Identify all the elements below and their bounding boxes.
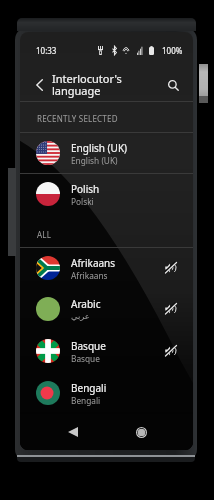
button[interactable]: Back — [29, 75, 49, 95]
staticText: ALL — [37, 229, 52, 240]
button[interactable]: English (UK) — [20, 132, 193, 174]
staticText: Bengali — [71, 381, 107, 395]
button[interactable]: Search — [163, 75, 183, 95]
staticText: Basque — [71, 339, 106, 353]
staticText: Polski — [71, 196, 94, 207]
button[interactable]: Back — [63, 422, 83, 442]
button[interactable]: Muted — [162, 342, 180, 360]
staticText: English (UK) — [71, 141, 128, 155]
button[interactable]: Arabic — [20, 288, 193, 330]
staticText: RECENTLY SELECTED — [37, 113, 118, 124]
button[interactable]: Home — [131, 422, 151, 442]
button[interactable]: Polish — [20, 173, 193, 215]
staticText: Polish — [71, 182, 100, 196]
button[interactable]: Basque — [20, 330, 193, 372]
staticText: Bengali — [71, 395, 101, 406]
button[interactable]: Bengali — [20, 372, 193, 414]
staticText: 100% — [162, 45, 183, 56]
staticText: Interlocutor's language — [52, 71, 122, 98]
button[interactable]: Muted — [162, 300, 180, 318]
staticText: Afrikaans — [71, 270, 108, 281]
staticText: Afrikaans — [71, 256, 116, 270]
staticText: English (UK) — [71, 155, 118, 166]
button[interactable]: Afrikaans — [20, 247, 193, 289]
staticText: Basque — [71, 353, 100, 364]
button[interactable]: Muted — [162, 259, 180, 277]
staticText: Arabic — [71, 297, 101, 311]
staticText: 10:33 — [36, 45, 57, 56]
staticText: عربي — [71, 311, 90, 321]
